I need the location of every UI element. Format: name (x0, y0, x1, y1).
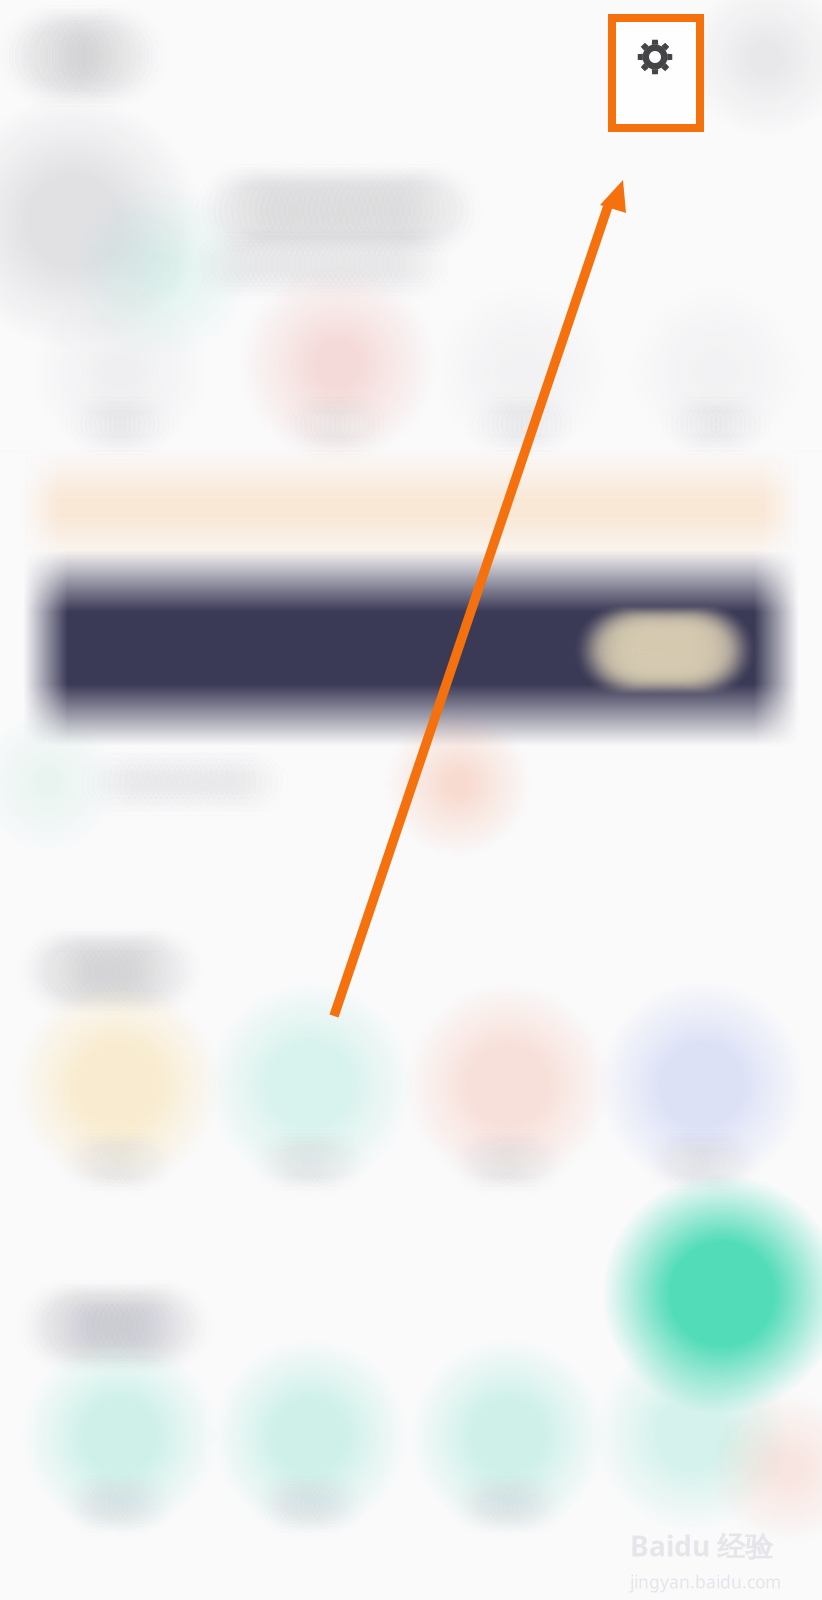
staticText: Baidu 经验 (630, 1527, 773, 1564)
staticText: jingyan.baidu.com (630, 1570, 781, 1593)
button[interactable]: Settings (612, 18, 700, 128)
